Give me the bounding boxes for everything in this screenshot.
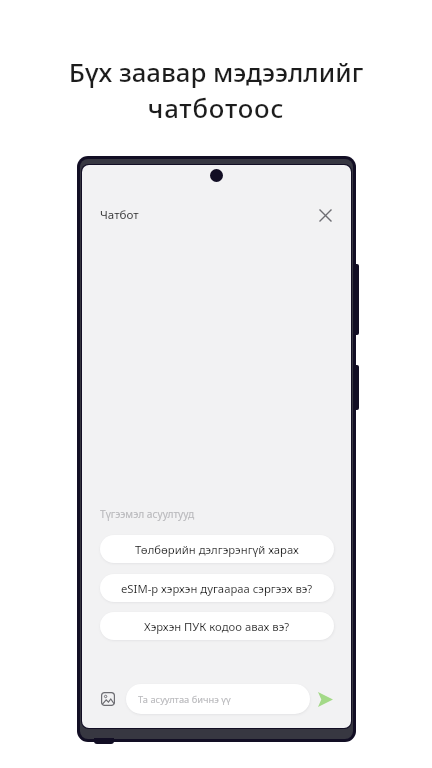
staticText: Түгээмэл асуултууд	[100, 507, 195, 521]
staticText: Төлбөрийн дэлгэрэнгүй харах	[135, 542, 299, 557]
staticText: Хэрхэн ПУК кодоо авах вэ?	[144, 619, 290, 634]
staticText: чатботоос	[0, 90, 432, 125]
staticText: Бүх заавар мэдээллийг	[0, 54, 432, 89]
button[interactable]: eSIM-р хэрхэн дугаараа сэргээх вэ?	[100, 574, 334, 602]
button[interactable]: Send	[317, 691, 333, 707]
staticText: Та асуултаа бичнэ үү	[138, 693, 231, 706]
button[interactable]: Close	[314, 204, 336, 226]
staticText: eSIM-р хэрхэн дугаараа сэргээх вэ?	[121, 581, 313, 596]
button[interactable]: Хэрхэн ПУК кодоо авах вэ?	[100, 612, 334, 640]
button[interactable]: Attach image	[100, 691, 116, 707]
button[interactable]: Та асуултаа бичнэ үү	[126, 684, 310, 714]
button[interactable]: Төлбөрийн дэлгэрэнгүй харах	[100, 535, 334, 563]
staticText: Чатбот	[100, 207, 139, 223]
